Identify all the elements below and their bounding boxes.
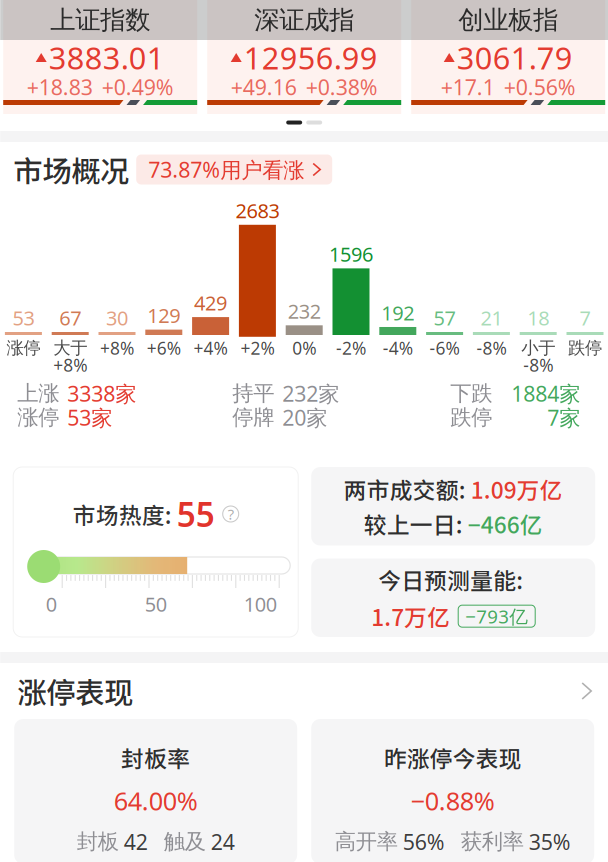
staticText: 持平 xyxy=(232,380,274,407)
staticText: 大于 xyxy=(53,337,87,359)
staticText: 429 xyxy=(194,289,227,316)
staticText: +0.38% xyxy=(306,73,378,101)
staticText: 跌停 xyxy=(450,404,492,431)
staticText: 30 xyxy=(106,304,128,331)
staticText: -4% xyxy=(383,336,413,359)
staticText: 100 xyxy=(244,591,277,617)
staticText: 7 xyxy=(579,304,590,331)
staticText: 56% xyxy=(403,827,445,856)
staticText: 下跌 xyxy=(450,380,492,407)
button[interactable]: 涨停表现 xyxy=(0,663,608,719)
staticText: 1.09万亿 xyxy=(471,472,563,505)
staticText: +8% xyxy=(53,353,87,376)
staticText: 1.7万亿 xyxy=(371,600,450,633)
staticText: 3061.79 xyxy=(457,37,573,78)
staticText: 较上一日: xyxy=(364,507,468,540)
staticText: 上证指数 xyxy=(50,4,150,35)
staticText: 2683 xyxy=(235,197,279,224)
staticText: 创业板指 xyxy=(458,4,558,35)
staticText: -2% xyxy=(336,336,366,359)
staticText: 小于 xyxy=(521,337,555,359)
button[interactable]: 深证成指 xyxy=(207,0,401,114)
staticText: 18 xyxy=(527,304,549,331)
staticText: 64.00% xyxy=(114,784,198,817)
staticText: 市场概况 xyxy=(13,148,129,191)
staticText: 12956.99 xyxy=(244,37,378,78)
staticText: 今日预测量能: xyxy=(378,563,528,596)
staticText: 53 xyxy=(12,304,34,331)
staticText: +8% xyxy=(100,336,134,359)
button[interactable]: 封板率 xyxy=(14,719,297,862)
staticText: 7家 xyxy=(547,403,580,432)
button[interactable]: 上证指数 xyxy=(3,0,197,114)
staticText: ? xyxy=(228,504,234,524)
staticText: +0.56% xyxy=(504,73,576,101)
staticText: +2% xyxy=(240,336,274,359)
staticText: +49.16 xyxy=(231,73,297,101)
staticText: 上涨 xyxy=(17,380,59,407)
staticText: 3338家 xyxy=(67,379,136,408)
button[interactable]: 今日预测量能: xyxy=(311,558,595,637)
staticText: 封板 xyxy=(77,828,119,855)
staticText: 涨停 xyxy=(6,337,40,359)
staticText: 涨停表现 xyxy=(17,670,133,712)
staticText: 53家 xyxy=(67,403,112,432)
button[interactable]: 73.87%用户看涨 xyxy=(136,154,332,184)
staticText: 1884家 xyxy=(511,379,580,408)
staticText: 20家 xyxy=(282,403,327,432)
staticText: 两市成交额: xyxy=(344,472,471,505)
staticText: -8% xyxy=(476,336,506,359)
button[interactable]: 创业板指 xyxy=(411,0,605,114)
staticText: 0 xyxy=(46,591,57,617)
staticText: 129 xyxy=(147,302,180,329)
staticText: 55 xyxy=(177,492,215,536)
staticText: +18.83 xyxy=(27,73,93,101)
staticText: 42 xyxy=(124,827,148,856)
button[interactable]: 市场热度: xyxy=(13,467,298,637)
staticText: 触及 xyxy=(164,828,206,855)
staticText: 停牌 xyxy=(232,404,274,431)
button[interactable]: 昨涨停今表现 xyxy=(311,719,594,862)
staticText: 73.87%用户看涨 xyxy=(148,155,304,184)
staticText: 192 xyxy=(381,299,414,326)
staticText: 50 xyxy=(145,591,167,617)
staticText: 35% xyxy=(529,827,571,856)
staticText: +4% xyxy=(194,336,228,359)
staticText: 市场热度: xyxy=(73,498,177,530)
staticText: 21 xyxy=(480,304,502,331)
staticText: +6% xyxy=(147,336,181,359)
staticText: 24 xyxy=(211,827,235,856)
staticText: 获利率 xyxy=(461,828,524,855)
staticText: 67 xyxy=(59,304,81,331)
staticText: 深证成指 xyxy=(254,4,354,35)
staticText: +17.1 xyxy=(441,73,495,101)
staticText: 跌停 xyxy=(568,337,602,359)
staticText: −0.88% xyxy=(411,784,495,817)
staticText: 封板率 xyxy=(121,741,190,774)
staticText: 57 xyxy=(434,304,456,331)
staticText: 0% xyxy=(292,336,316,359)
staticText: -8% xyxy=(523,353,553,376)
staticText: 232 xyxy=(288,298,321,324)
staticText: 232家 xyxy=(282,379,339,408)
staticText: 3883.01 xyxy=(49,37,165,78)
button[interactable]: 两市成交额: xyxy=(311,467,595,545)
staticText: 涨停 xyxy=(17,404,59,431)
staticText: 1596 xyxy=(329,241,373,267)
staticText: 高开率 xyxy=(335,828,398,855)
staticText: 昨涨停今表现 xyxy=(384,741,522,774)
staticText: +0.49% xyxy=(102,73,174,101)
staticText: −793亿 xyxy=(465,604,528,629)
staticText: −466亿 xyxy=(468,507,543,540)
staticText: -6% xyxy=(430,336,460,359)
